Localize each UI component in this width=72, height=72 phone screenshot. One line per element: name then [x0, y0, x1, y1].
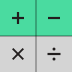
button[interactable]: Add [0, 0, 36, 36]
button[interactable]: Multiply [0, 36, 36, 72]
button[interactable]: Subtract [36, 0, 72, 36]
button[interactable]: Divide [36, 36, 72, 72]
